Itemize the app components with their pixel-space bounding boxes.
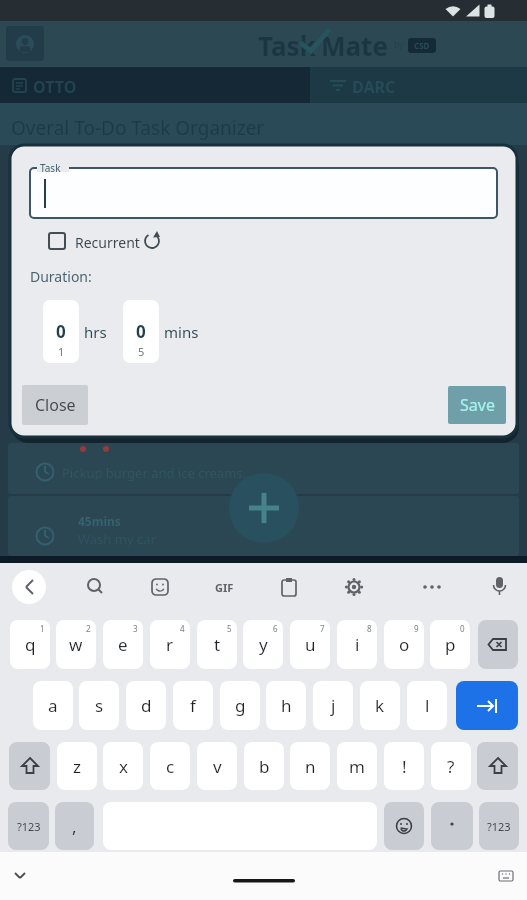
- staticText: z: [73, 755, 81, 778]
- staticText: Overal To-Do Task Organizer: [11, 115, 265, 141]
- button[interactable]: z: [57, 742, 97, 790]
- staticText: Pickup burger and ice creams...: [62, 464, 253, 482]
- button[interactable]: p: [430, 620, 470, 669]
- button[interactable]: f: [173, 681, 213, 730]
- staticText: n: [305, 755, 316, 778]
- staticText: b: [259, 755, 270, 778]
- button[interactable]: y: [243, 620, 283, 669]
- staticText: l: [425, 694, 430, 717]
- staticText: t: [214, 633, 221, 656]
- staticText: i: [355, 633, 360, 656]
- button[interactable]: j: [313, 681, 353, 730]
- staticText: d: [141, 694, 152, 717]
- staticText: 0: [136, 320, 146, 343]
- button[interactable]: [310, 67, 527, 103]
- staticText: 3: [133, 623, 138, 634]
- staticText: ?123: [487, 819, 511, 834]
- staticText: Mate: [321, 28, 388, 63]
- button[interactable]: l: [407, 681, 447, 730]
- button[interactable]: d: [126, 681, 166, 730]
- button[interactable]: k: [360, 681, 400, 730]
- button[interactable]: u: [290, 620, 330, 669]
- button[interactable]: Save: [448, 386, 506, 424]
- button[interactable]: Close: [22, 385, 88, 425]
- staticText: u: [305, 633, 316, 656]
- button[interactable]: [229, 473, 299, 543]
- staticText: mins: [164, 322, 199, 342]
- staticText: CSD: [414, 40, 430, 51]
- button[interactable]: ?123: [479, 802, 519, 850]
- staticText: !: [402, 755, 407, 778]
- button[interactable]: i: [337, 620, 377, 669]
- staticText: c: [166, 755, 175, 778]
- staticText: DARC: [352, 76, 396, 98]
- staticText: 9: [414, 623, 419, 634]
- button[interactable]: ?: [431, 742, 471, 790]
- staticText: 0: [460, 623, 465, 634]
- button[interactable]: c: [150, 742, 190, 790]
- button[interactable]: b: [244, 742, 284, 790]
- staticText: 4: [180, 623, 185, 634]
- button[interactable]: ,: [55, 802, 94, 850]
- button[interactable]: [9, 742, 50, 790]
- button[interactable]: v: [197, 742, 237, 790]
- staticText: y: [259, 633, 268, 656]
- button[interactable]: [384, 802, 424, 850]
- staticText: Save: [460, 394, 495, 416]
- staticText: 7: [320, 623, 325, 634]
- staticText: o: [399, 633, 410, 656]
- staticText: Task: [258, 28, 316, 63]
- staticText: 45mins: [78, 513, 121, 529]
- staticText: 2: [86, 623, 91, 634]
- button[interactable]: [0, 67, 310, 103]
- staticText: ?: [447, 755, 455, 778]
- button[interactable]: [12, 570, 46, 604]
- staticText: r: [166, 633, 174, 656]
- staticText: p: [445, 633, 456, 656]
- staticText: Wash my car: [78, 530, 156, 548]
- button[interactable]: ?123: [8, 802, 49, 850]
- button[interactable]: h: [266, 681, 306, 730]
- staticText: OTTO: [33, 76, 77, 98]
- button[interactable]: e: [103, 620, 143, 669]
- staticText: Recurrent: [75, 233, 140, 252]
- button[interactable]: [44, 228, 164, 254]
- staticText: 8: [367, 623, 372, 634]
- button[interactable]: w: [56, 620, 96, 669]
- staticText: q: [25, 633, 36, 656]
- button[interactable]: g: [220, 681, 260, 730]
- button[interactable]: s: [79, 681, 119, 730]
- button[interactable]: o: [384, 620, 424, 669]
- staticText: a: [48, 694, 58, 717]
- staticText: v: [213, 755, 222, 778]
- button[interactable]: [6, 26, 44, 61]
- staticText: 6: [273, 623, 278, 634]
- staticText: Close: [35, 394, 76, 416]
- staticText: 5: [138, 344, 145, 359]
- button[interactable]: [456, 681, 518, 730]
- staticText: m: [349, 755, 365, 778]
- button[interactable]: [477, 742, 518, 790]
- staticText: 0: [56, 320, 66, 343]
- button[interactable]: !: [384, 742, 424, 790]
- staticText: s: [95, 694, 104, 717]
- button[interactable]: q: [10, 620, 50, 669]
- button[interactable]: m: [337, 742, 377, 790]
- button[interactable]: t: [197, 620, 237, 669]
- staticText: Task: [40, 161, 61, 175]
- staticText: e: [118, 633, 128, 656]
- button[interactable]: r: [150, 620, 190, 669]
- button[interactable]: n: [290, 742, 330, 790]
- staticText: w: [69, 633, 83, 656]
- button[interactable]: a: [33, 681, 73, 730]
- staticText: 1: [58, 344, 65, 359]
- button[interactable]: [478, 620, 518, 669]
- staticText: g: [235, 694, 246, 717]
- staticText: ,: [72, 815, 77, 838]
- button[interactable]: x: [103, 742, 143, 790]
- staticText: k: [375, 694, 385, 717]
- staticText: 1: [40, 623, 45, 634]
- button[interactable]: [431, 802, 473, 850]
